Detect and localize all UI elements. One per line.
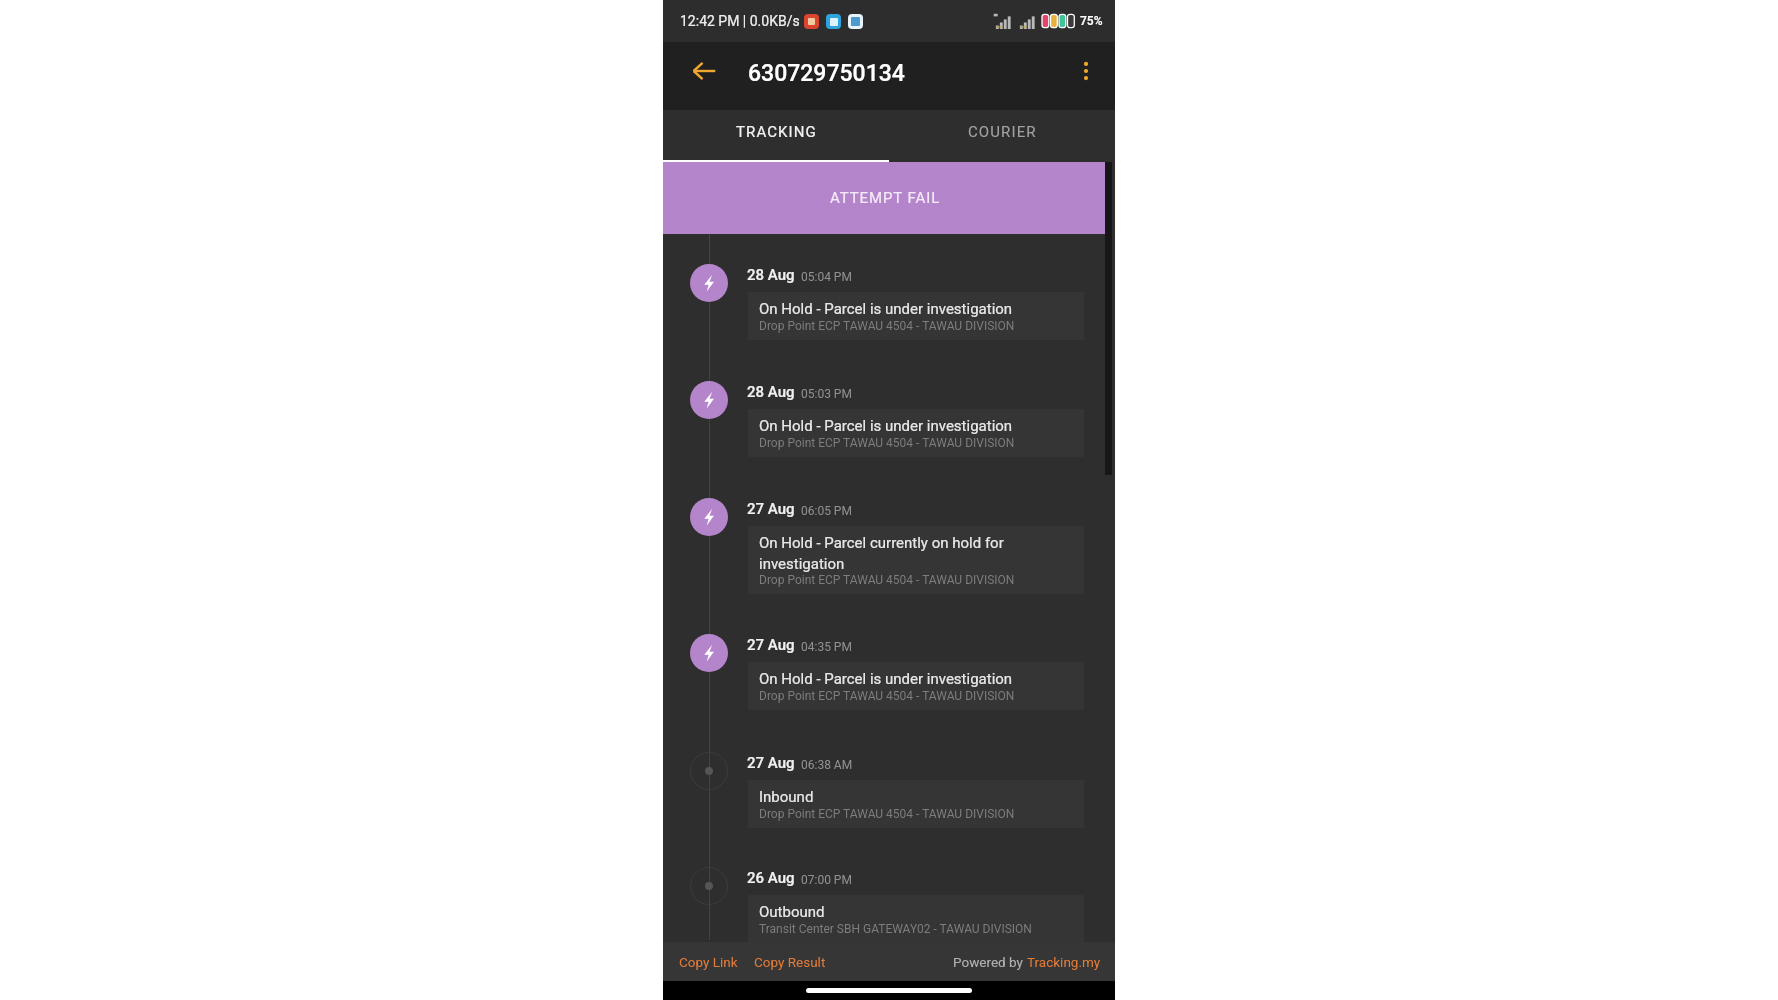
staticText: Drop Point ECP TAWAU 4504 - TAWAU DIVISI… — [759, 319, 1015, 333]
staticText: Drop Point ECP TAWAU 4504 - TAWAU DIVISI… — [759, 689, 1015, 703]
staticText: 630729750134 — [748, 60, 905, 87]
button[interactable]: ATTEMPT FAIL — [663, 162, 1107, 234]
button[interactable]: 28 Aug — [663, 264, 1115, 381]
staticText: 28 Aug — [747, 266, 795, 284]
staticText: 07:00 PM — [801, 873, 852, 887]
staticText: 27 Aug — [747, 636, 795, 654]
staticText: 27 Aug — [747, 754, 795, 772]
staticText: Outbound — [759, 903, 825, 921]
button[interactable]: 28 Aug — [663, 381, 1115, 498]
button[interactable]: COURIER — [889, 107, 1115, 157]
staticText: 28 Aug — [747, 383, 795, 401]
button[interactable]: Copy Result — [744, 948, 834, 976]
staticText: On Hold - Parcel is under investigation — [759, 300, 1013, 318]
staticText: COURIER — [968, 123, 1037, 141]
button[interactable]: 27 Aug — [663, 634, 1115, 751]
staticText: 26 Aug — [747, 869, 795, 887]
staticText: Inbound — [759, 788, 814, 806]
button[interactable]: 27 Aug — [663, 752, 1115, 869]
staticText: 05:03 PM — [801, 387, 852, 401]
staticText: 05:04 PM — [801, 270, 852, 284]
button[interactable]: 27 Aug — [663, 498, 1115, 634]
staticText: On Hold - Parcel is under investigation — [759, 417, 1013, 435]
staticText: Tracking.my — [1027, 954, 1101, 970]
staticText: Drop Point ECP TAWAU 4504 - TAWAU DIVISI… — [759, 573, 1015, 587]
staticText: Drop Point ECP TAWAU 4504 - TAWAU DIVISI… — [759, 807, 1015, 821]
staticText: ATTEMPT FAIL — [830, 189, 941, 207]
staticText: 12:42 PM | 0.0KB/s — [680, 13, 800, 29]
staticText: Copy Result — [754, 954, 826, 970]
staticText: 06:05 PM — [801, 504, 852, 518]
staticText: 27 Aug — [747, 500, 795, 518]
button[interactable]: 26 Aug — [663, 867, 1115, 984]
staticText: On Hold - Parcel is under investigation — [759, 670, 1013, 688]
button[interactable]: Powered by — [953, 948, 1115, 976]
staticText: Transit Center SBH GATEWAY02 - TAWAU DIV… — [759, 922, 1032, 936]
button[interactable]: Back — [681, 48, 727, 94]
staticText: Copy Link — [679, 954, 738, 970]
staticText: TRACKING — [736, 123, 817, 141]
staticText: Powered by — [953, 954, 1027, 970]
button[interactable]: More options — [1063, 48, 1109, 94]
staticText: Drop Point ECP TAWAU 4504 - TAWAU DIVISI… — [759, 436, 1015, 450]
staticText: 75% — [1080, 14, 1103, 28]
staticText: 06:38 AM — [801, 758, 853, 772]
staticText: On Hold - Parcel currently on hold for i… — [759, 534, 1074, 572]
button[interactable]: TRACKING — [663, 107, 889, 157]
button[interactable]: Copy Link — [663, 948, 744, 976]
staticText: 04:35 PM — [801, 640, 852, 654]
